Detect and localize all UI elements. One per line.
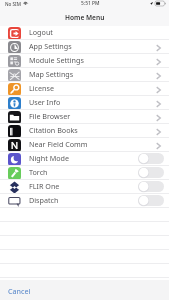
button[interactable]: Night Mode toggle (138, 153, 164, 164)
button[interactable]: Citation Books (0, 124, 169, 138)
staticText: File Browser (29, 111, 71, 121)
staticText: Near Field Comm (29, 139, 88, 149)
staticText: Home Menu (65, 13, 105, 22)
staticText: Dispatch (29, 195, 59, 205)
button[interactable]: Dispatch (0, 194, 169, 208)
staticText: License (29, 83, 55, 93)
button[interactable]: Map Settings (0, 68, 169, 82)
button[interactable]: FLIR One toggle (138, 181, 164, 192)
staticText: Citation Books (29, 125, 78, 135)
staticText: User Info (29, 97, 61, 107)
button[interactable]: Night Mode (0, 152, 169, 166)
staticText: Map Settings (29, 69, 74, 79)
button[interactable]: Near Field Comm (0, 138, 169, 152)
staticText: App Settings (29, 41, 72, 51)
staticText: FLIR One (29, 181, 60, 191)
button[interactable]: Torch (0, 166, 169, 180)
button[interactable]: User Info (0, 96, 169, 110)
button[interactable]: Logout (0, 26, 169, 40)
button[interactable]: License (0, 82, 169, 96)
staticText: 5:51 PM (81, 0, 100, 7)
staticText: Logout (29, 27, 53, 37)
staticText: Night Mode (29, 153, 69, 163)
button[interactable]: Cancel (8, 286, 31, 296)
button[interactable]: Dispatch toggle (138, 195, 164, 206)
button[interactable]: FLIR One (0, 180, 169, 194)
staticText: No SIM (5, 1, 21, 7)
button[interactable]: Module Settings (0, 54, 169, 68)
button[interactable]: App Settings (0, 40, 169, 54)
button[interactable]: File Browser (0, 110, 169, 124)
button[interactable]: Torch toggle (138, 167, 164, 178)
staticText: Torch (29, 167, 48, 177)
staticText: Module Settings (29, 55, 84, 65)
